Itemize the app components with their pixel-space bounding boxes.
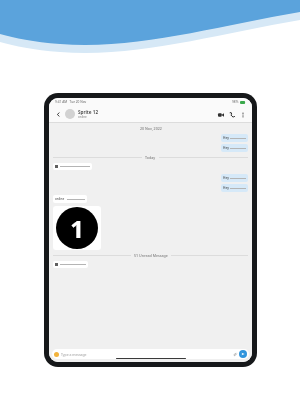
button[interactable]: 1 — [53, 206, 101, 250]
staticText: 51 Unread Message — [134, 253, 168, 258]
staticText: 1 — [70, 212, 84, 245]
staticText: Today — [145, 155, 156, 160]
button[interactable]: Type a message — [52, 349, 249, 359]
staticText: 98% — [232, 100, 239, 104]
staticText: 9:41 AM Tue 20 Nov — [55, 100, 87, 104]
button[interactable]: More options — [238, 110, 247, 119]
staticText: Sprite 12 — [78, 109, 99, 115]
button[interactable]: Sprite 12 — [78, 109, 216, 119]
button[interactable]: Attach — [232, 351, 238, 357]
staticText: Hey — [223, 146, 229, 150]
staticText: Type a message — [61, 352, 87, 357]
staticText: online — [78, 115, 87, 119]
button[interactable]: Hey — [221, 144, 248, 152]
button[interactable]: Send — [239, 350, 247, 358]
button[interactable]: Hey — [221, 134, 248, 142]
button[interactable]: Video call — [216, 110, 225, 119]
staticText: 20 Nov, 2022 — [140, 126, 162, 131]
staticText: Hey — [223, 186, 229, 190]
button[interactable]: online — [53, 195, 87, 203]
button[interactable]: Hey — [221, 174, 248, 182]
button[interactable]: Hey — [221, 184, 248, 192]
button[interactable] — [53, 163, 92, 170]
button[interactable] — [53, 261, 88, 268]
staticText: Hey — [223, 136, 229, 140]
staticText: online — [55, 197, 65, 201]
button[interactable]: Voice call — [227, 110, 236, 119]
button[interactable]: Back — [54, 110, 63, 119]
staticText: Hey — [223, 176, 229, 180]
